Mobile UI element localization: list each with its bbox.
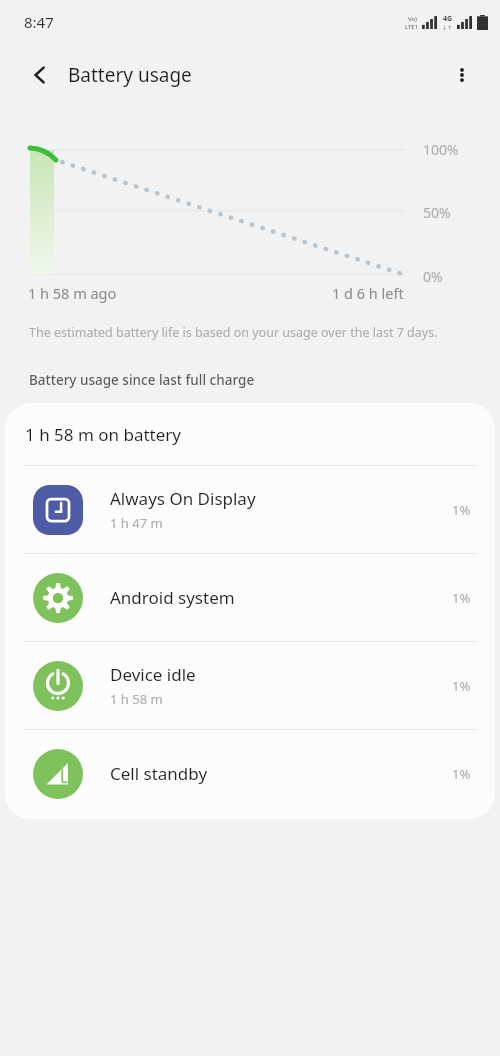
button[interactable]: Android system — [5, 554, 495, 641]
button[interactable]: Always On Display — [5, 466, 495, 553]
staticText: The estimated battery life is based on y… — [29, 324, 438, 341]
staticText: 1% — [452, 589, 471, 607]
staticText: 1 h 58 m — [110, 690, 163, 708]
staticText: 1% — [452, 765, 471, 783]
staticText: 4G — [443, 14, 453, 24]
staticText: Vo) — [408, 15, 417, 23]
staticText: 1 h 47 m — [110, 514, 163, 532]
staticText: 100% — [423, 140, 459, 159]
button[interactable]: More options — [442, 55, 482, 95]
staticText: 0% — [423, 267, 443, 286]
button[interactable]: Back — [20, 55, 60, 95]
button[interactable]: Device idle — [5, 642, 495, 729]
staticText: 1% — [452, 501, 471, 519]
staticText: 1% — [452, 677, 471, 695]
staticText: 1 h 58 m ago — [28, 283, 117, 303]
staticText: Battery usage since last full charge — [29, 371, 255, 389]
staticText: Battery usage — [68, 62, 192, 88]
staticText: 8:47 — [24, 12, 54, 32]
staticText: Cell standby — [110, 762, 208, 785]
staticText: Device idle — [110, 663, 196, 686]
staticText: Always On Display — [110, 487, 256, 510]
staticText: 1 d 6 h left — [332, 283, 404, 303]
staticText: 1 h 58 m on battery — [25, 423, 182, 446]
staticText: Android system — [110, 586, 235, 609]
staticText: ↓↑ — [442, 24, 453, 31]
staticText: 50% — [423, 203, 451, 222]
button[interactable]: Cell standby — [5, 730, 495, 817]
staticText: LTE1 — [405, 23, 419, 31]
